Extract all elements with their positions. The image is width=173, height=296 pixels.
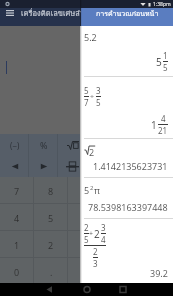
button[interactable]: การคำนวณก่อนหน้า	[81, 0, 173, 26]
button[interactable]: 8	[34, 177, 68, 204]
button[interactable]: left	[0, 156, 29, 177]
staticText: 2	[90, 184, 94, 192]
staticText: 4	[101, 234, 106, 245]
button[interactable]: 5	[34, 204, 68, 231]
button[interactable]: 7	[0, 177, 34, 204]
staticText: ÷	[90, 92, 95, 102]
button[interactable]: 5	[0, 178, 173, 219]
staticText: 5	[48, 212, 54, 224]
button[interactable]: 4	[0, 204, 34, 231]
button[interactable]: 2	[0, 219, 173, 277]
button[interactable]: 1	[0, 231, 34, 258]
staticText: 78.5398163397448	[88, 201, 168, 213]
button[interactable]: pct	[29, 134, 58, 156]
button[interactable]: frac	[58, 156, 80, 177]
staticText: 3	[93, 258, 98, 269]
staticText: +	[89, 229, 94, 239]
staticText: 7	[14, 185, 20, 197]
staticText: 0	[14, 266, 20, 278]
button[interactable]: sqrt	[58, 134, 80, 156]
staticText: 3	[96, 85, 101, 96]
button[interactable]: Open navigation menu	[3, 6, 17, 20]
button[interactable]: 5	[0, 77, 173, 139]
staticText: เครื่องคิดเลขเศษส่วน	[21, 7, 90, 19]
staticText: 2	[89, 146, 95, 158]
button[interactable]: neg	[0, 134, 29, 156]
button[interactable]: 0	[0, 258, 34, 285]
staticText: 4	[161, 113, 166, 124]
staticText: 39.2	[150, 267, 168, 279]
staticText: π	[94, 184, 100, 196]
staticText: 1:38pm	[153, 1, 171, 8]
staticText: 8	[48, 185, 54, 197]
staticText: 5	[84, 85, 89, 96]
button[interactable]: =	[68, 258, 80, 285]
button[interactable]: 5.2	[0, 27, 173, 77]
staticText: 5	[156, 55, 162, 69]
button[interactable]: 2	[0, 139, 173, 178]
staticText: 3	[101, 222, 106, 233]
staticText: 1	[151, 118, 157, 132]
staticText: 5	[84, 184, 90, 196]
staticText: 5	[163, 62, 168, 73]
staticText: 21	[158, 125, 168, 136]
button[interactable]: .	[34, 258, 68, 285]
staticText: 1	[163, 50, 168, 61]
staticText: การคำนวณก่อนหน้า	[96, 8, 159, 19]
staticText: 1.4142135623731	[93, 160, 168, 172]
button[interactable]: right	[29, 156, 58, 177]
staticText: 7	[84, 97, 89, 108]
staticText: .	[50, 266, 53, 278]
staticText: 5	[96, 97, 101, 108]
staticText: %	[40, 139, 48, 151]
staticText: 2	[94, 227, 100, 241]
staticText: 2	[48, 239, 54, 251]
staticText: 1	[14, 239, 20, 251]
button[interactable]: 2	[34, 231, 68, 258]
staticText: 2	[84, 222, 89, 233]
staticText: 5.2	[84, 31, 97, 43]
staticText: 2	[93, 246, 98, 257]
staticText: (−)	[10, 140, 20, 151]
staticText: 4	[14, 212, 20, 224]
staticText: 5	[84, 234, 89, 245]
